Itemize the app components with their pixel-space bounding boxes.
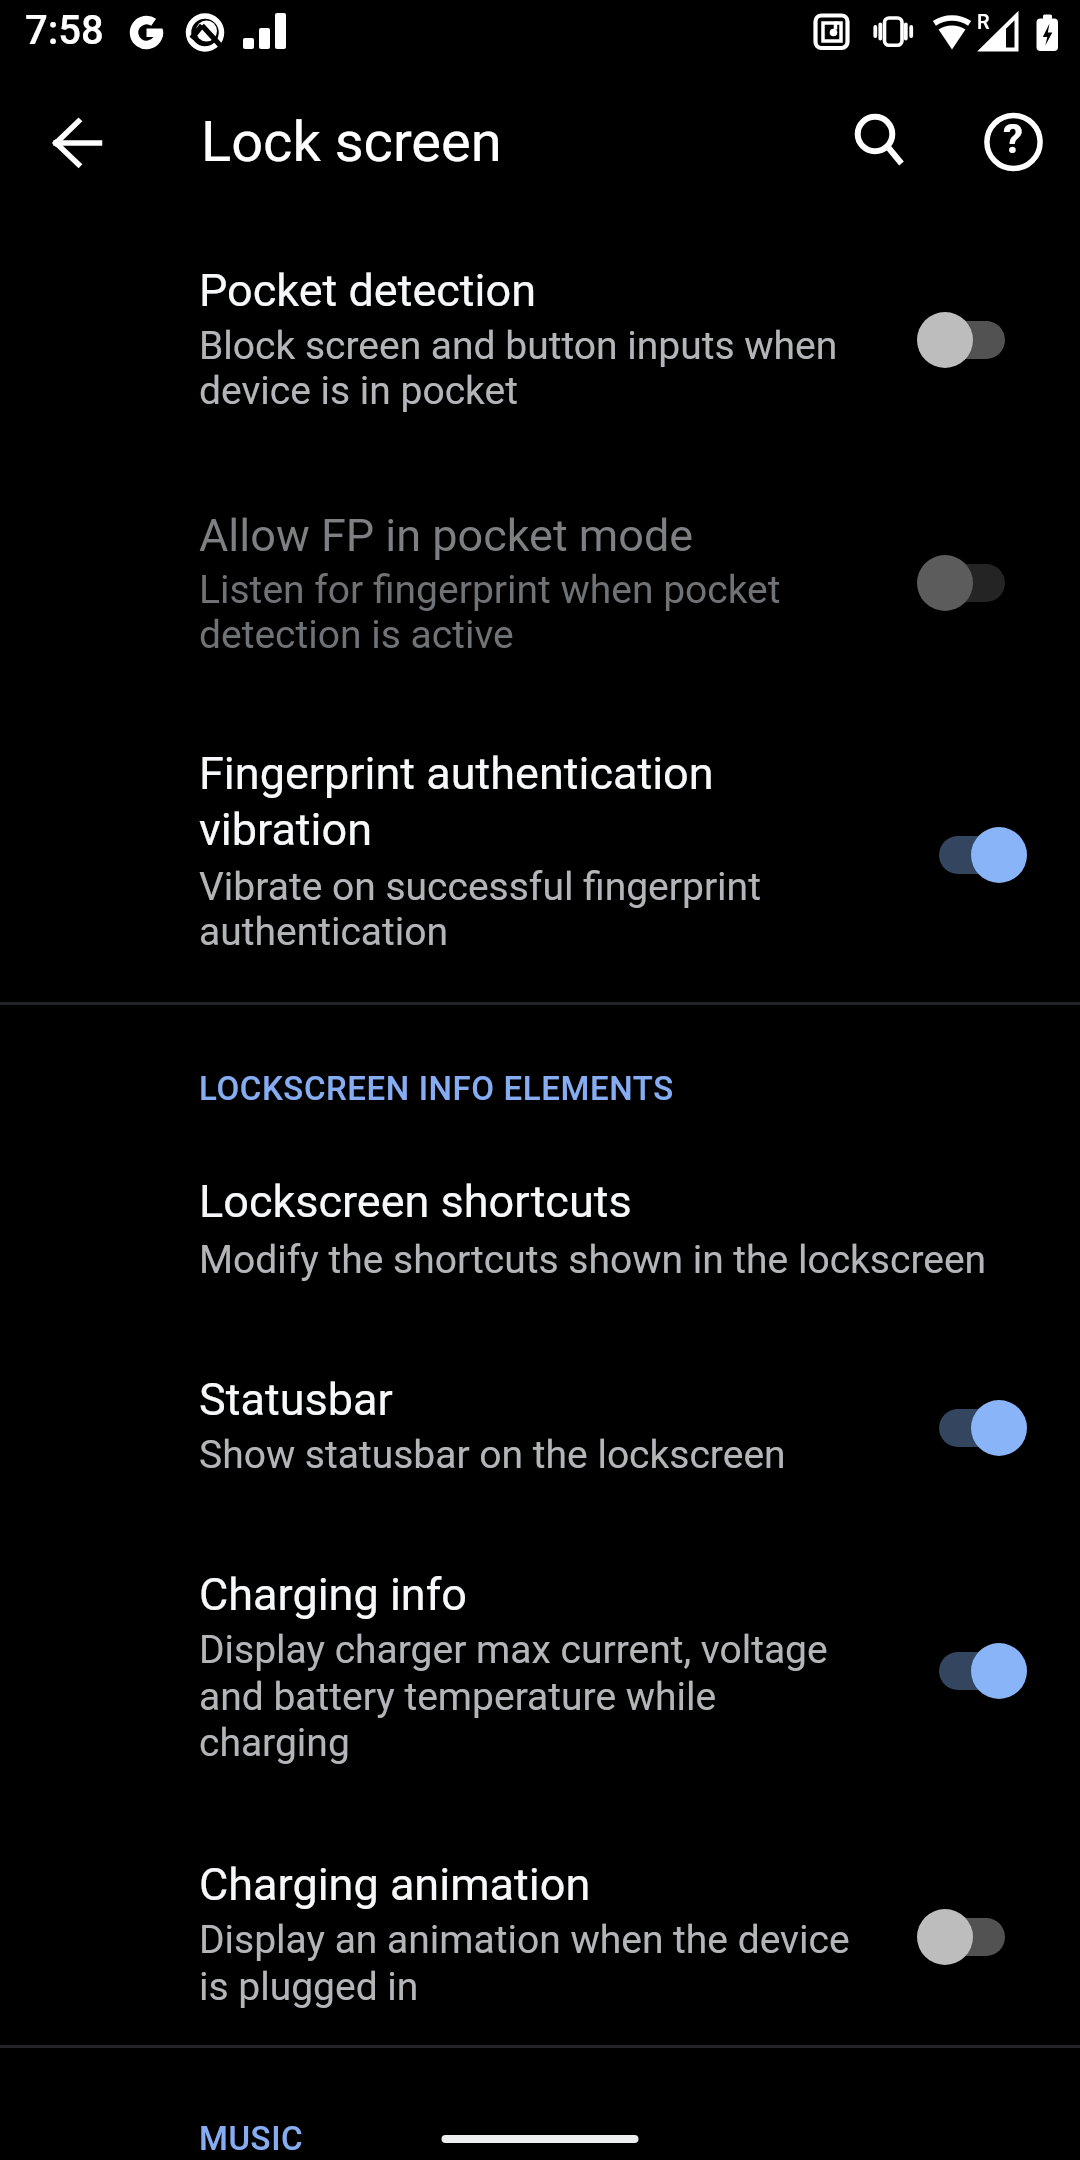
button[interactable]: Charging info xyxy=(0,1510,1080,1800)
staticText: R xyxy=(977,10,990,33)
button[interactable]: Pocket detection xyxy=(0,236,1080,470)
staticText: Listen for fingerprint when pocket xyxy=(199,567,781,613)
staticText: Lock screen xyxy=(201,109,502,175)
staticText: vibration xyxy=(199,803,373,856)
staticText: MUSIC xyxy=(199,2119,304,2158)
button[interactable] xyxy=(910,1641,1034,1701)
button[interactable]: Allow FP in pocket mode xyxy=(0,470,1080,700)
staticText: Lockscreen shortcuts xyxy=(199,1175,632,1228)
button[interactable] xyxy=(841,104,909,176)
staticText: authentication xyxy=(199,909,449,955)
staticText: Display an animation when the device xyxy=(199,1917,850,1963)
staticText: LOCKSCREEN INFO ELEMENTS xyxy=(199,1069,674,1108)
staticText: Pocket detection xyxy=(199,264,536,317)
staticText: Charging animation xyxy=(199,1858,591,1911)
staticText: 7:58 xyxy=(25,7,104,54)
button[interactable] xyxy=(910,1398,1034,1458)
staticText: charging xyxy=(199,1720,350,1766)
staticText: device is in pocket xyxy=(199,368,518,414)
button[interactable] xyxy=(910,310,1034,370)
staticText: Fingerprint authentication xyxy=(199,747,714,800)
button[interactable] xyxy=(910,553,1034,613)
staticText: Statusbar xyxy=(199,1373,393,1426)
staticText: Display charger max current, voltage xyxy=(199,1627,828,1673)
staticText: Allow FP in pocket mode xyxy=(199,509,694,562)
button[interactable]: ? xyxy=(977,106,1050,178)
button[interactable]: Fingerprint authentication xyxy=(0,700,1080,1000)
staticText: Modify the shortcuts shown in the locksc… xyxy=(199,1237,987,1283)
button[interactable]: Lockscreen shortcuts xyxy=(0,1130,1080,1310)
staticText: and battery temperature while xyxy=(199,1674,717,1720)
staticText: ? xyxy=(1003,116,1023,163)
staticText: is plugged in xyxy=(199,1964,419,2010)
staticText: Vibrate on successful fingerprint xyxy=(199,864,761,910)
staticText: Show statusbar on the lockscreen xyxy=(199,1432,786,1478)
button[interactable] xyxy=(40,107,112,179)
button[interactable]: Statusbar xyxy=(0,1310,1080,1510)
staticText: Block screen and button inputs when xyxy=(199,323,838,369)
button[interactable]: Charging animation xyxy=(0,1800,1080,2044)
button[interactable] xyxy=(910,1907,1034,1967)
staticText: Charging info xyxy=(199,1568,467,1621)
staticText: detection is active xyxy=(199,612,514,658)
button[interactable] xyxy=(910,825,1034,885)
